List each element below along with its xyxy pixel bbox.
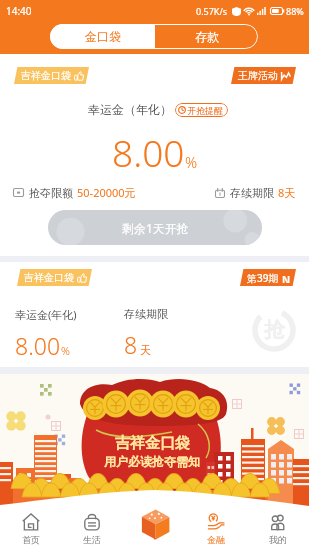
staticText: 幸运金（年化）	[88, 102, 172, 117]
staticText: 王牌活动	[238, 69, 278, 82]
staticText: N	[282, 273, 291, 283]
staticText: 存续期限	[230, 186, 274, 200]
staticText: 吉祥金口袋	[21, 69, 71, 82]
staticText: 金口袋	[85, 29, 121, 44]
staticText: 8.00	[15, 330, 61, 361]
staticText: 0.57K/s	[196, 5, 228, 17]
staticText: 存款	[195, 29, 219, 44]
staticText: 开抢提醒	[187, 105, 223, 116]
staticText: 第39期	[247, 271, 279, 285]
button[interactable]: 第39期	[247, 269, 291, 286]
staticText: %	[185, 152, 198, 172]
button[interactable]: 生活	[61, 508, 123, 550]
button[interactable]: 首页	[0, 508, 61, 550]
button[interactable]: 金口袋	[50, 24, 155, 49]
button[interactable]: 吉祥金口袋	[0, 374, 309, 508]
staticText: 50-20000元	[77, 185, 136, 200]
button[interactable]: 金融	[185, 508, 247, 550]
staticText: 存续期限	[124, 307, 168, 321]
button[interactable]: 吉祥金口袋	[24, 269, 87, 286]
staticText: 8.00	[112, 127, 185, 177]
staticText: 首页	[22, 534, 40, 545]
button[interactable]: 王牌活动	[238, 67, 291, 84]
staticText: 幸运金(年化)	[15, 307, 77, 322]
button[interactable]: 吉祥金口袋	[21, 67, 84, 84]
staticText: 88%	[286, 5, 304, 17]
staticText: 用户必读抢夺需知	[104, 454, 200, 469]
staticText: 8天	[278, 185, 296, 200]
button[interactable]: 存款	[155, 24, 258, 49]
staticText: 吉祥金口袋	[115, 434, 190, 453]
button[interactable]: 抢	[0, 262, 309, 367]
staticText: 生活	[83, 534, 101, 545]
staticText: 14:40	[6, 4, 32, 18]
staticText: 剩余1天开抢	[122, 220, 189, 236]
button[interactable]: 开抢提醒	[178, 103, 223, 117]
button[interactable]: 我的	[247, 508, 309, 550]
staticText: 8	[124, 329, 138, 360]
button[interactable]: 剩余1天开抢	[48, 210, 262, 245]
staticText: 我的	[269, 534, 287, 545]
staticText: 天	[140, 343, 151, 357]
staticText: 金融	[207, 534, 225, 545]
button[interactable]: 抢红包	[139, 509, 171, 540]
staticText: 抢夺限额	[29, 186, 73, 200]
staticText: 抢	[264, 317, 285, 343]
staticText: %	[61, 343, 70, 358]
staticText: 吉祥金口袋	[24, 271, 74, 284]
button[interactable]: 抢红包	[123, 508, 185, 550]
